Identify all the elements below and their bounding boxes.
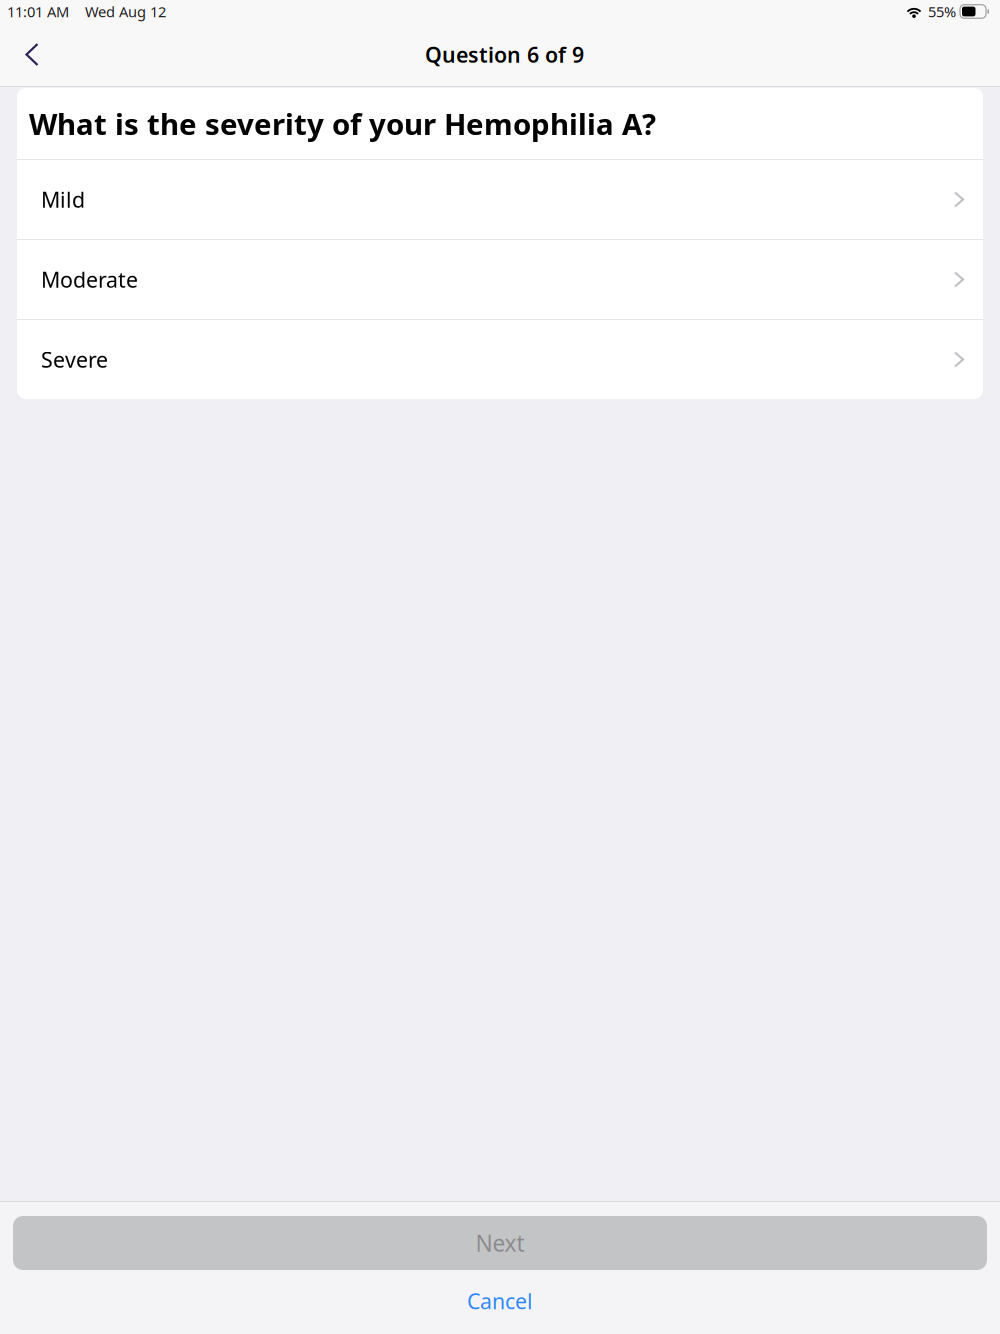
button[interactable]: Mild	[17, 160, 983, 239]
button[interactable]: Next	[13, 1216, 987, 1270]
staticText: Mild	[41, 185, 85, 214]
button[interactable]: Cancel	[13, 1270, 987, 1332]
staticText: What is the severity of your Hemophilia …	[29, 104, 656, 143]
staticText: 55%	[928, 2, 956, 21]
button[interactable]: Severe	[17, 320, 983, 399]
staticText: Severe	[41, 345, 108, 374]
staticText: Moderate	[41, 265, 138, 294]
button[interactable]: Back	[9, 31, 55, 77]
staticText: Cancel	[467, 1287, 533, 1315]
staticText: 11:01 AM	[7, 2, 69, 21]
staticText: Question 6 of 9	[425, 40, 584, 69]
staticText: Next	[475, 1228, 524, 1258]
staticText: Wed Aug 12	[85, 2, 166, 21]
button[interactable]: Moderate	[17, 240, 983, 319]
